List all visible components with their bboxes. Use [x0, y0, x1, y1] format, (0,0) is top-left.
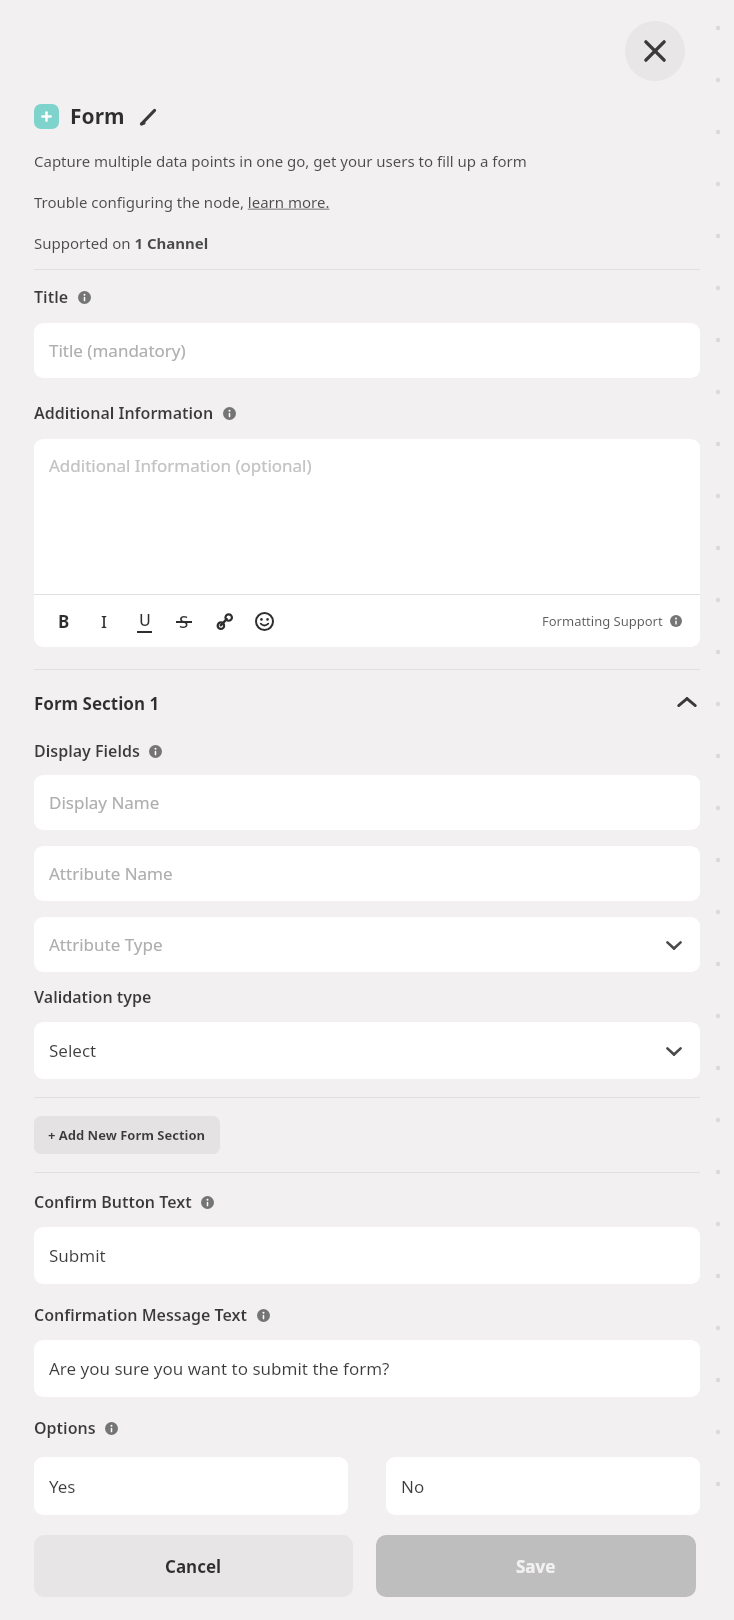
staticText: Confirm Button Text: [34, 1191, 192, 1213]
staticText: Are you sure you want to submit the form…: [49, 1357, 390, 1380]
staticText: Formatting Support: [542, 612, 663, 630]
staticText: Attribute Name: [49, 862, 173, 885]
staticText: Display Fields: [34, 740, 140, 762]
staticText: Form: [70, 102, 125, 131]
button[interactable]: Edit name: [137, 106, 159, 128]
button[interactable]: Attribute Name: [34, 846, 700, 901]
staticText: Options: [34, 1417, 96, 1439]
staticText: Yes: [49, 1475, 76, 1498]
button[interactable]: Italic: [92, 609, 116, 633]
button[interactable]: Underline: [132, 609, 156, 633]
staticText: Form Section 1: [34, 692, 160, 715]
staticText: Trouble configuring the node, learn more…: [34, 192, 330, 212]
button[interactable]: No: [386, 1457, 700, 1515]
button[interactable]: Close: [625, 21, 685, 81]
button[interactable]: Attribute Type: [34, 917, 700, 972]
staticText: + Add New Form Section: [48, 1126, 206, 1144]
staticText: Validation type: [34, 986, 152, 1008]
button[interactable]: Are you sure you want to submit the form…: [34, 1340, 700, 1397]
staticText: Title (mandatory): [49, 339, 186, 362]
button[interactable]: Yes: [34, 1457, 348, 1515]
staticText: Supported on 1 Channel: [34, 233, 209, 253]
staticText: S: [179, 610, 189, 633]
button[interactable]: Cancel: [34, 1535, 353, 1597]
button[interactable]: Title (mandatory): [34, 323, 700, 378]
button[interactable]: Save: [376, 1535, 696, 1597]
staticText: Confirmation Message Text: [34, 1304, 248, 1326]
button[interactable]: Display Name: [34, 775, 700, 830]
button[interactable]: Strikethrough: [172, 609, 196, 633]
staticText: I: [101, 610, 108, 633]
button[interactable]: Bold: [52, 609, 76, 633]
other: Collapse section: [674, 690, 700, 716]
staticText: Save: [516, 1555, 556, 1578]
button[interactable]: Formatting Support: [542, 612, 682, 630]
staticText: U: [139, 609, 151, 631]
button[interactable]: Form Section 1: [34, 690, 700, 716]
staticText: Capture multiple data points in one go, …: [34, 151, 527, 171]
button[interactable]: Select: [34, 1022, 700, 1079]
staticText: Display Name: [49, 791, 160, 814]
staticText: Additional Information (optional): [49, 454, 312, 477]
staticText: Submit: [49, 1244, 106, 1267]
staticText: Title: [34, 286, 69, 308]
staticText: Cancel: [165, 1555, 222, 1578]
staticText: Attribute Type: [49, 933, 163, 956]
staticText: B: [58, 610, 70, 633]
staticText: Select: [49, 1039, 97, 1062]
staticText: No: [401, 1475, 425, 1498]
button[interactable]: Insert link: [212, 609, 236, 633]
button[interactable]: Emoji: [252, 609, 276, 633]
button[interactable]: + Add New Form Section: [34, 1116, 220, 1154]
staticText: Additional Information: [34, 402, 214, 424]
button[interactable]: Submit: [34, 1227, 700, 1284]
